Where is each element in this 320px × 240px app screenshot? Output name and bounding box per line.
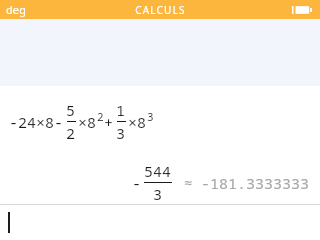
staticText: 3 xyxy=(147,109,154,124)
staticText: 3 xyxy=(153,184,163,204)
button[interactable] xyxy=(0,205,320,240)
staticText: ×8 xyxy=(78,112,97,132)
button[interactable]: Battery xyxy=(292,4,314,16)
staticText: 1 xyxy=(116,100,126,120)
staticText: - xyxy=(132,173,142,193)
staticText: 3 xyxy=(116,123,126,143)
staticText: + xyxy=(104,112,114,132)
staticText: -24×8- xyxy=(9,112,64,132)
button[interactable]: -24×8- xyxy=(9,100,154,143)
staticText: 2 xyxy=(97,109,104,124)
staticText: ≈ xyxy=(184,173,193,192)
staticText: ×8 xyxy=(128,112,147,132)
button[interactable]: - xyxy=(0,161,310,204)
staticText: 5 xyxy=(66,100,76,120)
staticText: -181.3333333 xyxy=(201,173,310,193)
staticText: 544 xyxy=(144,161,172,181)
staticText: 2 xyxy=(66,123,76,143)
staticText: CALCULS xyxy=(135,3,186,17)
button[interactable]: deg xyxy=(0,2,32,17)
staticText: deg xyxy=(6,2,26,17)
